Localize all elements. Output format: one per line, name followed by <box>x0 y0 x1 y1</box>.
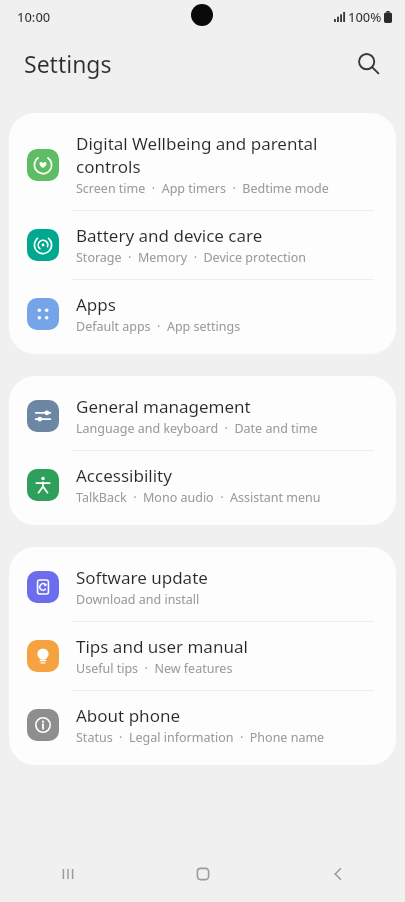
staticText: About phone <box>76 704 181 727</box>
button[interactable]: Recent apps <box>0 846 135 902</box>
button[interactable]: Apps <box>9 280 396 348</box>
staticText: 100% <box>348 8 382 26</box>
staticText: Digital Wellbeing and parental controls <box>76 132 318 178</box>
button[interactable]: Battery and device care <box>9 211 396 279</box>
button[interactable]: Back <box>270 846 405 902</box>
staticText: Status · Legal information · Phone name <box>76 729 325 746</box>
button[interactable]: Software update <box>9 553 396 621</box>
staticText: TalkBack · Mono audio · Assistant menu <box>76 489 321 506</box>
button[interactable]: General management <box>9 382 396 450</box>
staticText: Settings <box>24 48 112 79</box>
staticText: Default apps · App settings <box>76 318 241 335</box>
button[interactable]: Home <box>135 846 270 902</box>
staticText: Battery and device care <box>76 224 263 247</box>
staticText: 10:00 <box>17 8 51 26</box>
button[interactable]: Search <box>345 40 391 86</box>
staticText: General management <box>76 395 251 418</box>
staticText: Tips and user manual <box>76 635 248 658</box>
staticText: Storage · Memory · Device protection <box>76 249 307 266</box>
staticText: Software update <box>76 566 208 589</box>
staticText: Apps <box>76 293 116 316</box>
button[interactable]: Tips and user manual <box>9 622 396 690</box>
button[interactable]: About phone <box>9 691 396 759</box>
staticText: Language and keyboard · Date and time <box>76 420 318 437</box>
staticText: Useful tips · New features <box>76 660 233 677</box>
staticText: Download and install <box>76 591 200 608</box>
staticText: Screen time · App timers · Bedtime mode <box>76 180 329 197</box>
staticText: Accessibility <box>76 464 172 487</box>
button[interactable]: Accessibility <box>9 451 396 519</box>
button[interactable]: Digital Wellbeing and parental controls <box>9 119 396 210</box>
